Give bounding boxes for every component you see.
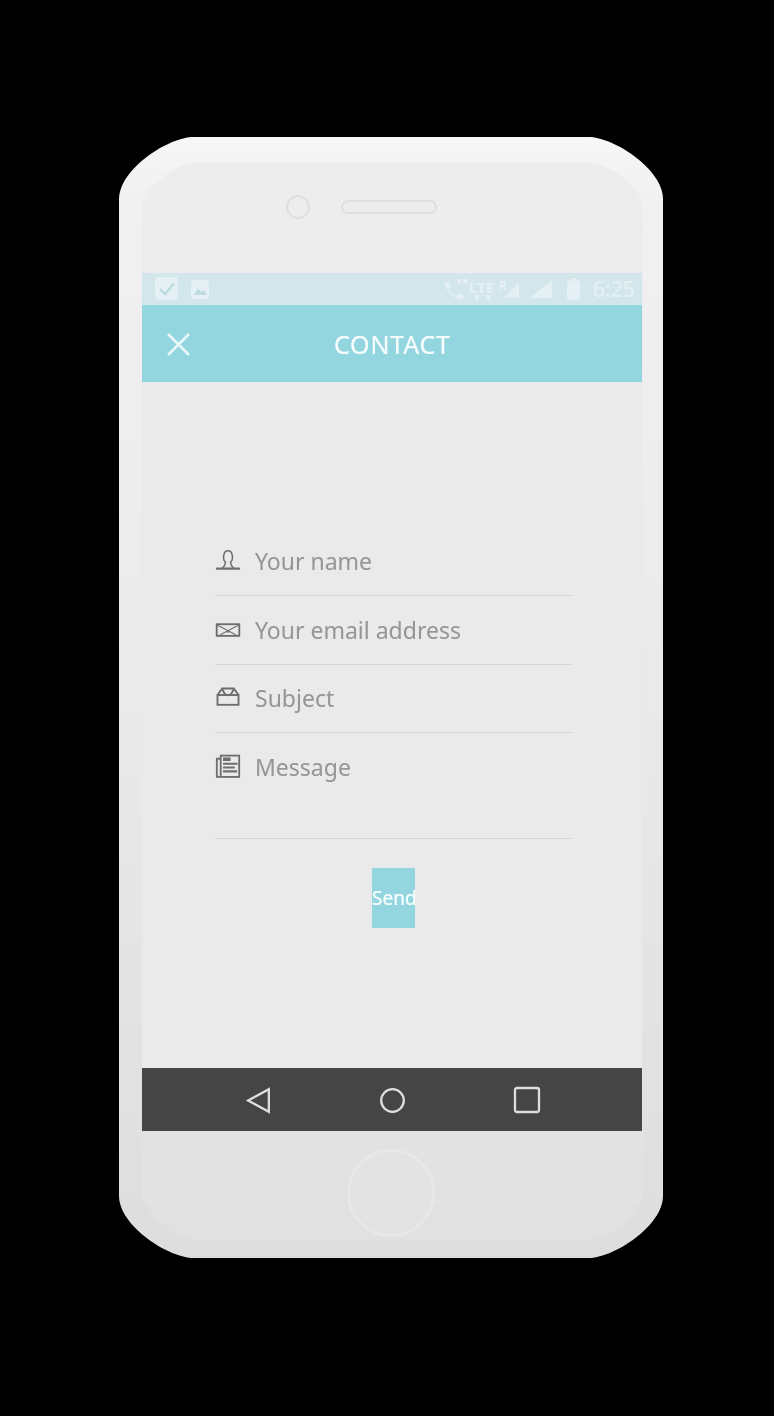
staticText: Send: [372, 885, 415, 911]
button[interactable]: Back: [235, 1077, 281, 1123]
staticText: LTE: [469, 277, 495, 297]
button[interactable]: Subject: [215, 677, 572, 733]
staticText: R: [499, 277, 507, 293]
staticText: 6:25: [593, 275, 635, 304]
staticText: Your name: [255, 545, 373, 576]
button[interactable]: Recents: [504, 1077, 550, 1123]
button[interactable]: Your email address: [215, 609, 572, 665]
button[interactable]: Your name: [215, 540, 572, 596]
button[interactable]: Message: [215, 746, 572, 839]
staticText: CONTACT: [334, 327, 451, 361]
button[interactable]: Close: [154, 320, 202, 368]
staticText: Message: [255, 751, 351, 782]
staticText: Subject: [255, 682, 335, 713]
button[interactable]: Send: [372, 868, 415, 928]
staticText: Your email address: [255, 614, 461, 645]
button[interactable]: Home: [369, 1077, 415, 1123]
